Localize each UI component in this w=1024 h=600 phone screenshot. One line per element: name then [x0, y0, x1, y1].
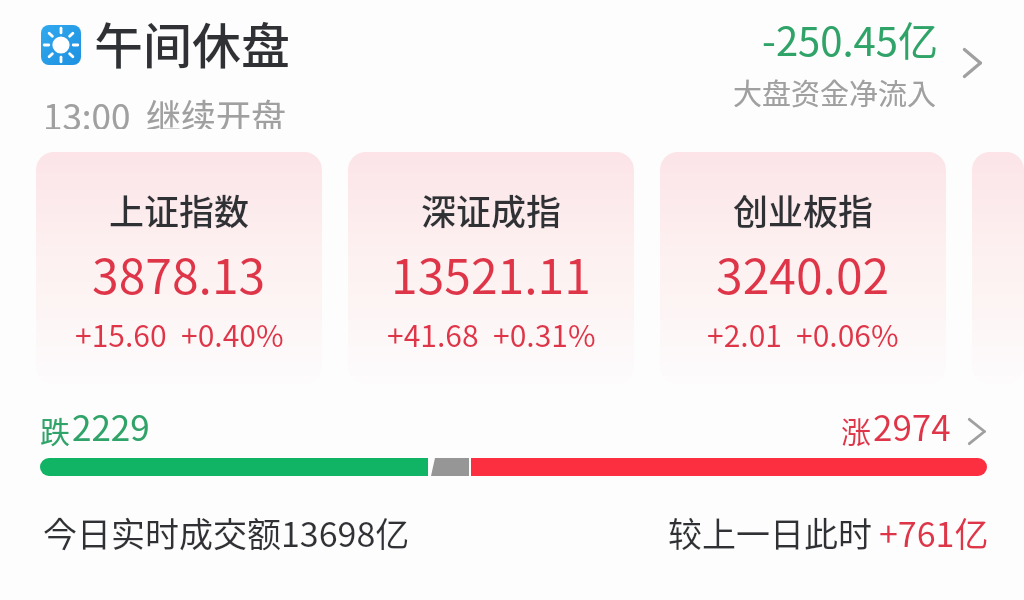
staticText: 2974: [873, 400, 951, 451]
staticText: 午间休盘: [94, 7, 291, 78]
staticText: 跌: [40, 408, 70, 451]
staticText: 涨: [841, 408, 871, 451]
staticText: +2.01: [707, 312, 782, 355]
staticText: 3240.02: [716, 238, 890, 308]
staticText: -250.45亿: [762, 10, 938, 68]
staticText: 今日实时成交额13698亿: [43, 508, 410, 557]
staticText: 深证成指: [421, 184, 562, 235]
button[interactable]: Midday market break: [0, 9, 1024, 129]
staticText: +0.40%: [181, 312, 284, 355]
other: Midday market break: [41, 25, 81, 65]
staticText: 上证指数: [109, 184, 250, 235]
staticText: 13:00 继续开盘: [43, 89, 287, 129]
button[interactable]: 创业板指: [660, 152, 946, 384]
other: Advance decline ratio: [40, 458, 987, 476]
button[interactable]: 深证成指: [348, 152, 634, 384]
button[interactable]: 上证指数: [36, 152, 322, 384]
staticText: 3878.13: [92, 238, 266, 308]
staticText: +761亿: [879, 508, 989, 557]
staticText: 2229: [72, 400, 150, 451]
staticText: 大盘资金净流入: [733, 71, 937, 113]
staticText: +15.60: [75, 312, 167, 355]
staticText: +0.06%: [796, 312, 899, 355]
button[interactable]: Capital flow details: [938, 9, 1024, 129]
staticText: 创业板指: [733, 184, 874, 235]
staticText: 13521.11: [391, 238, 591, 308]
button[interactable]: More indices: [972, 152, 1024, 384]
staticText: +41.68: [387, 312, 479, 355]
staticText: 较上一日此时: [668, 508, 872, 557]
button[interactable]: 跌: [40, 400, 986, 451]
staticText: +0.31%: [493, 312, 596, 355]
